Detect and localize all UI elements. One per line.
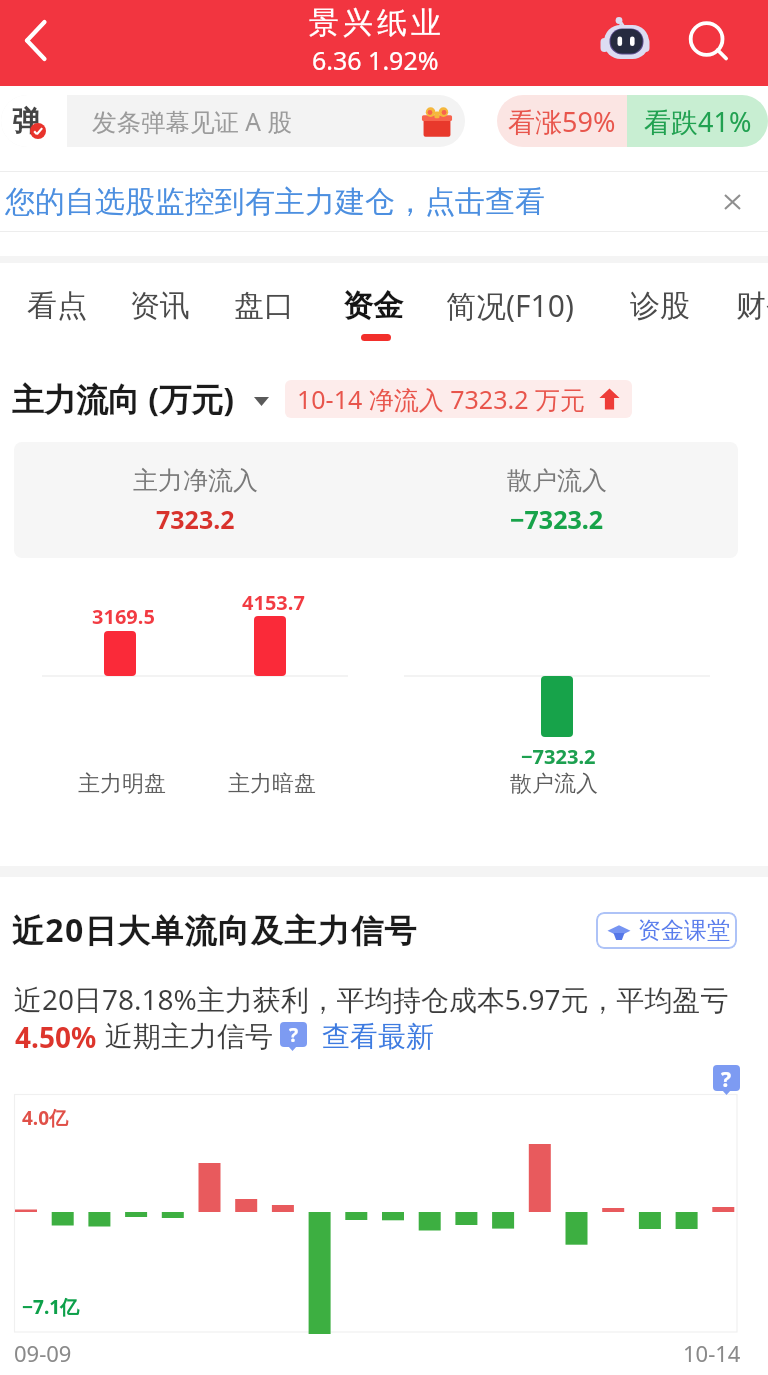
staticText: −7.1亿 — [22, 1294, 80, 1320]
staticText: 财务 — [736, 287, 768, 325]
staticText: 近20日78.18%主力获利，平均持仓成本5.97元，平均盈亏 — [14, 980, 729, 1018]
staticText: 弹 — [12, 103, 41, 140]
staticText: 6.36 1.92% — [312, 43, 439, 77]
button[interactable]: 弹 — [1, 95, 465, 147]
button[interactable]: Close notice — [710, 180, 754, 224]
staticText: 简况(F10) — [446, 285, 574, 326]
button[interactable]: 简况(F10) — [440, 263, 580, 348]
staticText: 近20日大单流向及主力信号 — [12, 908, 418, 952]
staticText: −7323.2 — [521, 743, 596, 770]
staticText: 散户流入 — [507, 465, 607, 496]
button[interactable]: 10-14 净流入 7323.2 万元 — [285, 380, 632, 418]
staticText: 10-14 净流入 7323.2 万元 — [297, 382, 585, 416]
staticText: 景兴纸业 — [307, 4, 443, 42]
staticText: 盘口 — [234, 287, 294, 325]
button[interactable]: 看涨59% — [497, 95, 627, 147]
staticText: 7323.2 — [156, 502, 235, 536]
staticText: 近期主力信号： — [105, 1019, 301, 1054]
staticText: 资金 — [343, 287, 403, 325]
button[interactable]: 盘口 — [220, 263, 308, 348]
staticText: 主力明盘 — [78, 770, 166, 798]
staticText: 看跌41% — [644, 103, 752, 140]
button[interactable]: Help — [280, 1022, 307, 1047]
button[interactable]: AI assistant — [593, 10, 659, 76]
staticText: 看点 — [27, 287, 87, 325]
staticText: 主力净流入 — [133, 465, 258, 496]
staticText: 10-14 — [683, 1338, 741, 1368]
button[interactable]: 资金课堂 — [596, 912, 737, 949]
staticText: 09-09 — [14, 1338, 72, 1368]
staticText: ? — [721, 1065, 732, 1091]
button[interactable]: 看跌41% — [627, 95, 768, 147]
staticText: 3169.5 — [92, 603, 155, 630]
staticText: 主力流向 (万元) — [12, 377, 235, 421]
button[interactable]: Help — [713, 1065, 740, 1091]
staticText: 看涨59% — [508, 103, 616, 140]
staticText: −7323.2 — [510, 502, 604, 536]
button[interactable]: 主力流向 (万元) — [12, 377, 269, 421]
staticText: 主力暗盘 — [228, 770, 316, 798]
staticText: 诊股 — [630, 287, 690, 325]
staticText: 发条弹幕见证 A 股 — [92, 105, 292, 138]
button[interactable]: 查看最新 — [322, 1019, 434, 1054]
button[interactable]: 财务 — [722, 263, 768, 348]
staticText: 4153.7 — [242, 589, 305, 616]
button[interactable]: 资金 — [329, 263, 417, 348]
staticText: 资讯 — [130, 287, 190, 325]
button[interactable]: 您的自选股监控到有主力建仓，点击查看 — [0, 171, 768, 232]
staticText: ? — [289, 1022, 299, 1047]
staticText: 资金课堂 — [638, 916, 730, 945]
button[interactable]: 诊股 — [616, 263, 704, 348]
staticText: 散户流入 — [510, 770, 598, 798]
staticText: 您的自选股监控到有主力建仓，点击查看 — [5, 183, 545, 221]
button[interactable]: Search — [674, 7, 740, 73]
button[interactable]: Back — [0, 0, 72, 86]
button[interactable]: 资讯 — [116, 263, 204, 348]
staticText: 4.50% — [15, 1018, 97, 1054]
staticText: 4.0亿 — [22, 1105, 69, 1131]
button[interactable]: 看点 — [13, 263, 101, 348]
